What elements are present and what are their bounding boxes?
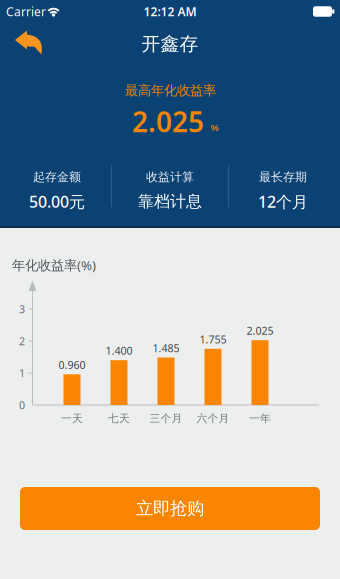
staticText: 六个月 [196,412,229,425]
staticText: 三个月 [149,412,182,425]
staticText: 最长存期 [259,170,307,184]
staticText: 50.00元 [29,191,85,212]
staticText: 立即抢购 [136,498,204,519]
staticText: 2.025 [132,103,204,140]
staticText: 收益计算 [146,170,194,184]
staticText: 开鑫存 [141,32,198,55]
staticText: 0 [19,398,25,412]
staticText: 七天 [108,412,130,425]
staticText: 1.400 [105,344,132,358]
staticText: 一年 [249,412,271,425]
button[interactable]: 立即抢购 [20,487,320,530]
staticText: 12:12 AM [143,3,196,19]
staticText: 1 [19,366,25,380]
staticText: 起存金额 [33,170,81,184]
staticText: 0.960 [58,358,85,372]
staticText: % [210,121,218,134]
staticText: 一天 [61,412,83,425]
staticText: 年化收益率(%) [12,256,96,274]
staticText: Carrier [6,3,46,19]
staticText: 3 [19,302,25,316]
staticText: 最高年化收益率 [125,82,216,99]
staticText: 2.025 [246,324,273,338]
staticText: 1.755 [199,332,226,346]
staticText: 1.485 [152,341,179,355]
staticText: 2 [19,334,25,348]
staticText: 靠档计息 [138,192,202,211]
staticText: 12个月 [258,191,308,212]
button[interactable]: Back [14,30,42,55]
